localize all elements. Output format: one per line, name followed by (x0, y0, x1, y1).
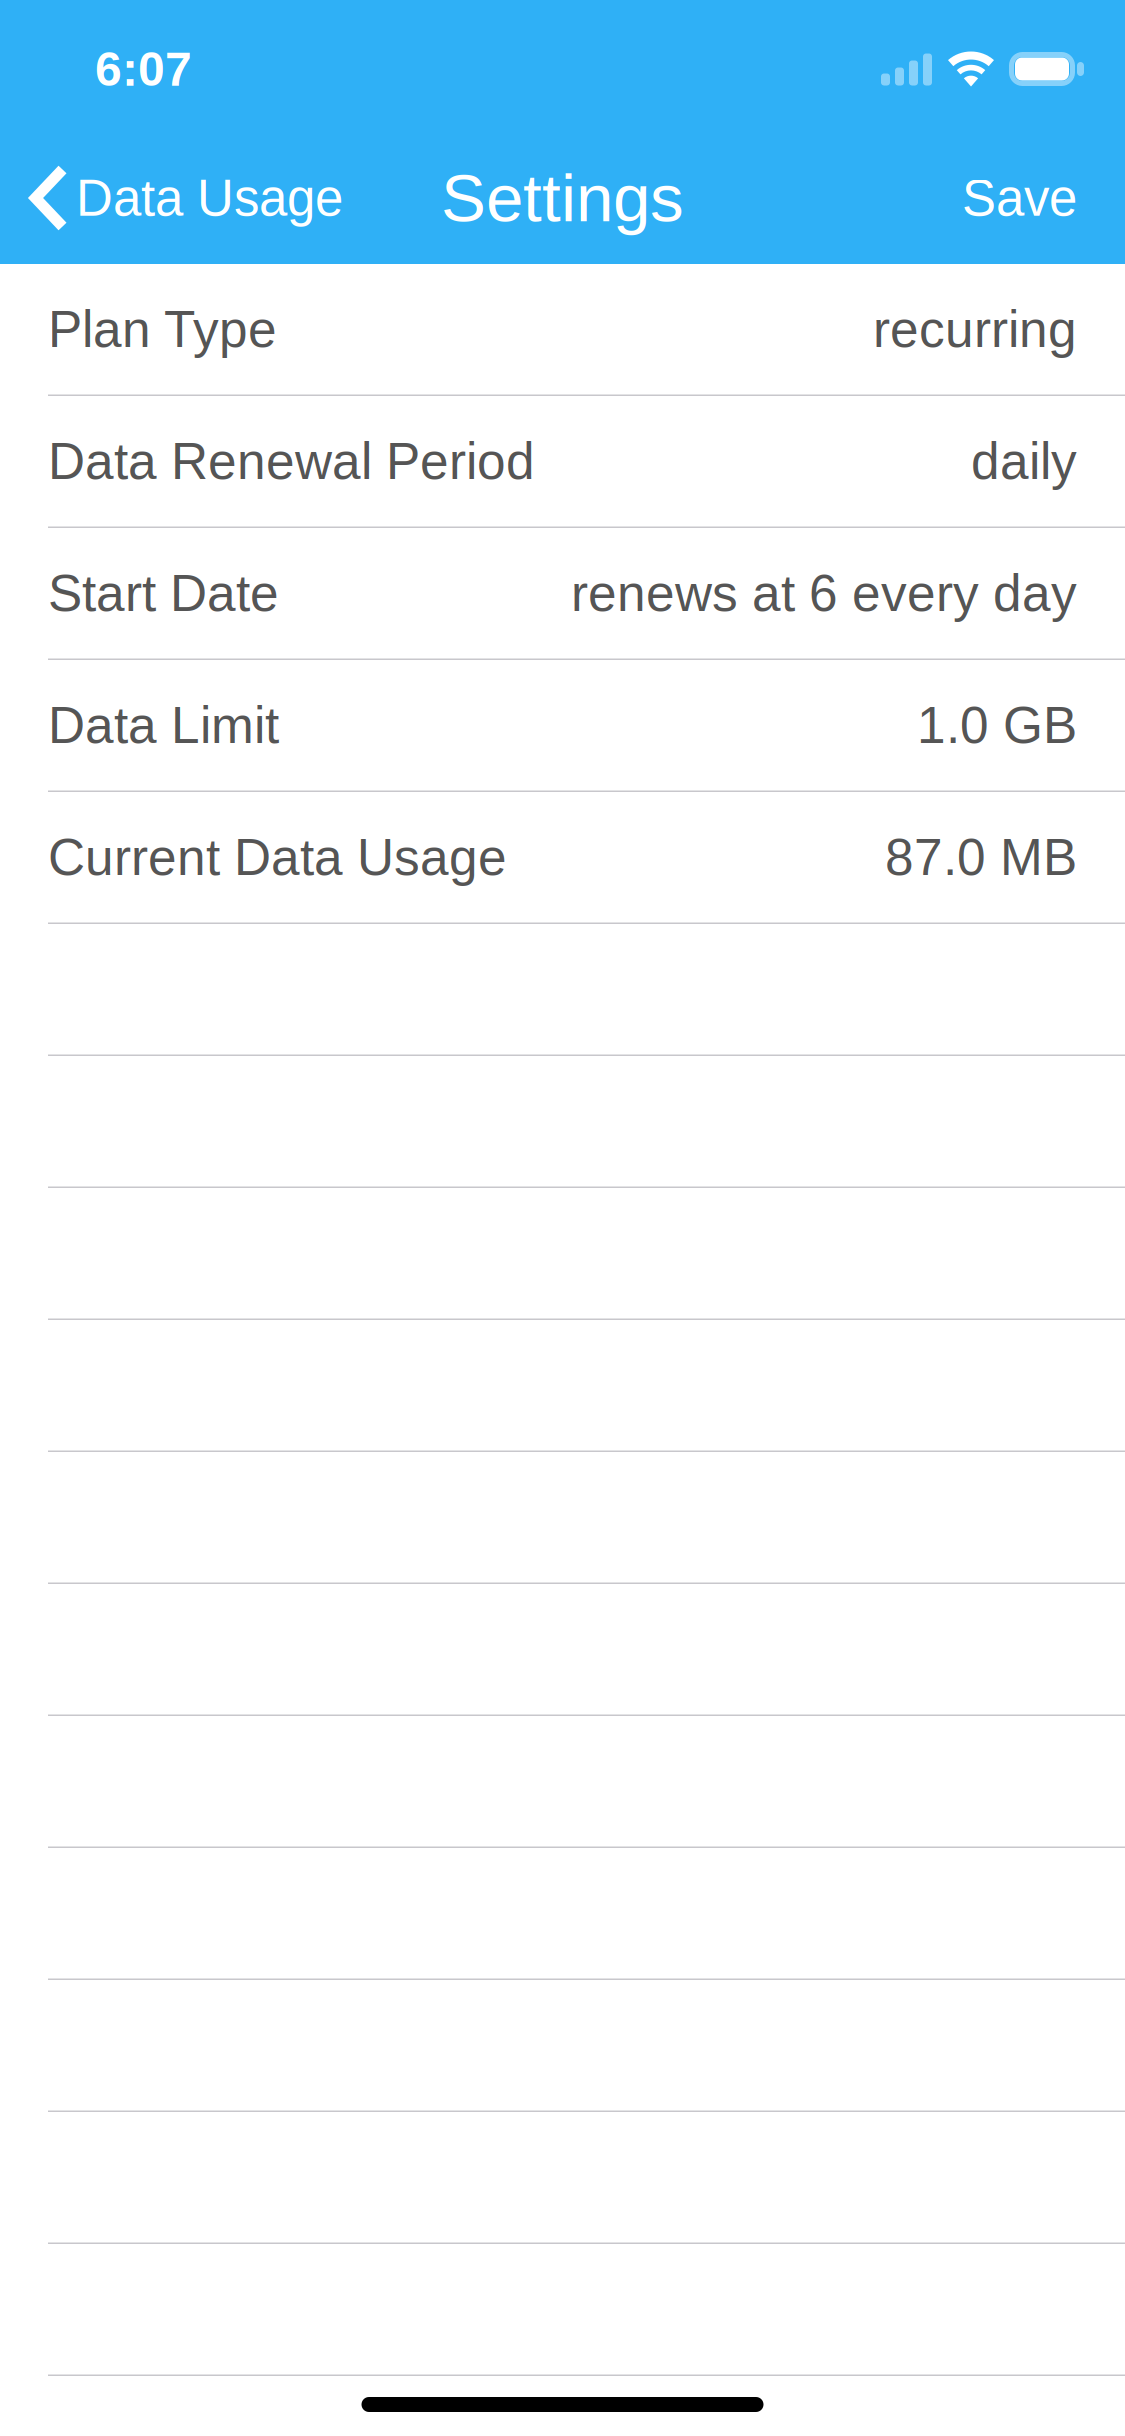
staticText: renews at 6 every day (571, 565, 1077, 622)
staticText: recurring (873, 301, 1077, 358)
staticText: Current Data Usage (48, 829, 507, 886)
button[interactable]: Save (918, 132, 1125, 264)
button[interactable]: Data Limit (0, 660, 1125, 792)
staticText: Data Usage (76, 169, 343, 226)
staticText: Plan Type (48, 301, 277, 358)
button[interactable]: Plan Type (0, 264, 1125, 396)
staticText: Data Limit (48, 697, 279, 754)
staticText: Start Date (48, 565, 279, 622)
button[interactable]: Current Data Usage (0, 792, 1125, 924)
button[interactable]: Data Renewal Period (0, 396, 1125, 528)
button[interactable]: Back to Data Usage (0, 132, 365, 264)
staticText: 87.0 MB (885, 829, 1077, 886)
staticText: daily (971, 433, 1077, 490)
button[interactable]: Start Date (0, 528, 1125, 660)
staticText: Data Renewal Period (48, 433, 535, 490)
staticText: Settings (441, 160, 684, 236)
staticText: 6:07 (95, 42, 192, 96)
staticText: 1.0 GB (917, 697, 1077, 754)
staticText: Save (962, 169, 1077, 226)
